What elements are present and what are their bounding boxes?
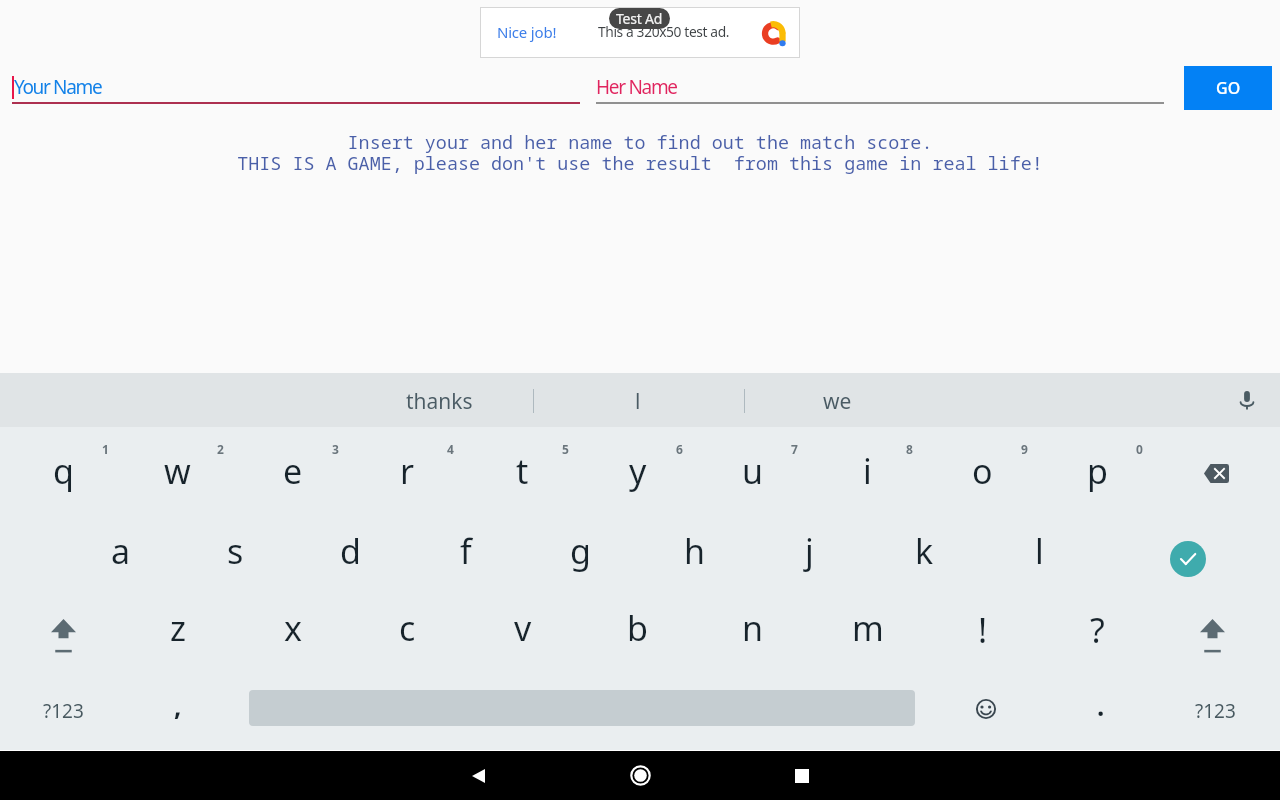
button[interactable]: ! bbox=[925, 589, 1040, 670]
staticText: ?123 bbox=[43, 698, 84, 724]
button[interactable]: Nice job! bbox=[480, 7, 800, 58]
button[interactable]: ?123 bbox=[6, 670, 121, 751]
button[interactable]: v bbox=[465, 589, 580, 670]
button[interactable]: e bbox=[235, 427, 350, 508]
button[interactable]: u bbox=[695, 427, 810, 508]
button[interactable]: d bbox=[293, 508, 408, 589]
button[interactable]: f bbox=[408, 508, 523, 589]
staticText: GO bbox=[1216, 77, 1241, 99]
staticText: Insert your and her name to find out the… bbox=[237, 129, 1043, 175]
staticText: f bbox=[460, 528, 472, 574]
staticText: , bbox=[174, 688, 182, 723]
staticText: 8 bbox=[906, 441, 913, 457]
button[interactable]: a bbox=[63, 508, 178, 589]
staticText: 5 bbox=[562, 441, 569, 457]
button[interactable]: n bbox=[695, 589, 810, 670]
button[interactable]: s bbox=[178, 508, 293, 589]
staticText: j bbox=[805, 528, 814, 574]
staticText: ?123 bbox=[1195, 698, 1236, 724]
staticText: 7 bbox=[791, 441, 798, 457]
staticText: e bbox=[283, 448, 303, 494]
staticText: 2 bbox=[217, 441, 224, 457]
staticText: 0 bbox=[1136, 441, 1143, 457]
button[interactable]: , bbox=[120, 670, 235, 751]
button[interactable]: p bbox=[1040, 427, 1155, 508]
button[interactable]: l bbox=[982, 508, 1097, 589]
staticText: m bbox=[852, 605, 884, 651]
button[interactable]: z bbox=[120, 589, 235, 670]
staticText: ? bbox=[1090, 607, 1105, 653]
staticText: p bbox=[1087, 448, 1108, 494]
button[interactable]: l bbox=[568, 373, 708, 427]
staticText: ! bbox=[978, 607, 988, 653]
button[interactable]: m bbox=[810, 589, 925, 670]
button[interactable]: w bbox=[120, 427, 235, 508]
staticText: y bbox=[629, 448, 647, 494]
staticText: 3 bbox=[332, 441, 339, 457]
staticText: This a 320x50 test ad. bbox=[598, 22, 730, 41]
staticText: Her Name bbox=[596, 74, 677, 100]
button[interactable]: GO bbox=[1184, 66, 1272, 110]
staticText: v bbox=[514, 605, 532, 651]
staticText: 6 bbox=[676, 441, 683, 457]
staticText: l bbox=[635, 387, 641, 416]
button[interactable]: Recents bbox=[778, 751, 826, 800]
button[interactable]: q bbox=[6, 427, 121, 508]
button[interactable]: Back bbox=[454, 751, 502, 800]
staticText: t bbox=[516, 448, 529, 494]
staticText: b bbox=[627, 605, 648, 651]
staticText: r bbox=[400, 448, 415, 494]
staticText: Nice job! bbox=[497, 22, 557, 42]
staticText: k bbox=[915, 528, 934, 574]
button[interactable]: y bbox=[580, 427, 695, 508]
button[interactable]: thanks bbox=[369, 373, 509, 427]
button[interactable]: ? bbox=[1040, 589, 1155, 670]
button[interactable]: Backspace bbox=[1159, 427, 1274, 508]
button[interactable]: j bbox=[752, 508, 867, 589]
staticText: 1 bbox=[102, 441, 109, 457]
staticText: u bbox=[742, 448, 764, 494]
button[interactable]: t bbox=[465, 427, 580, 508]
staticText: Test Ad bbox=[616, 9, 663, 28]
staticText: x bbox=[284, 605, 302, 651]
staticText: q bbox=[53, 448, 74, 494]
staticText: w bbox=[164, 448, 191, 494]
button[interactable]: Voice input bbox=[1223, 374, 1271, 422]
staticText: l bbox=[1035, 528, 1044, 574]
button[interactable]: Shift bbox=[1155, 589, 1270, 670]
button[interactable]: b bbox=[580, 589, 695, 670]
staticText: 9 bbox=[1021, 441, 1028, 457]
button[interactable]: we bbox=[767, 373, 907, 427]
button[interactable]: Enter bbox=[1130, 508, 1245, 589]
staticText: s bbox=[227, 528, 244, 574]
button[interactable]: g bbox=[523, 508, 638, 589]
button[interactable]: x bbox=[235, 589, 350, 670]
button[interactable]: Shift bbox=[6, 589, 121, 670]
button[interactable]: o bbox=[925, 427, 1040, 508]
button[interactable]: Emoji bbox=[928, 670, 1043, 751]
button[interactable]: Home bbox=[616, 751, 664, 800]
staticText: h bbox=[684, 528, 706, 574]
staticText: d bbox=[340, 528, 361, 574]
staticText: a bbox=[111, 528, 131, 574]
staticText: o bbox=[972, 448, 993, 494]
button[interactable]: r bbox=[350, 427, 465, 508]
staticText: z bbox=[170, 605, 186, 651]
button[interactable]: Her Name bbox=[596, 62, 1164, 108]
staticText: Your Name bbox=[14, 74, 102, 100]
button[interactable]: k bbox=[867, 508, 982, 589]
button[interactable]: . bbox=[1043, 670, 1158, 751]
staticText: we bbox=[823, 387, 852, 416]
button[interactable]: ?123 bbox=[1158, 670, 1273, 751]
button[interactable]: i bbox=[810, 427, 925, 508]
button[interactable]: c bbox=[350, 589, 465, 670]
staticText: 4 bbox=[447, 441, 454, 457]
staticText: c bbox=[399, 605, 416, 651]
staticText: n bbox=[742, 605, 764, 651]
staticText: i bbox=[863, 448, 872, 494]
button[interactable]: h bbox=[637, 508, 752, 589]
staticText: g bbox=[570, 528, 591, 574]
button[interactable]: Your Name bbox=[12, 62, 580, 108]
staticText: thanks bbox=[406, 387, 473, 416]
